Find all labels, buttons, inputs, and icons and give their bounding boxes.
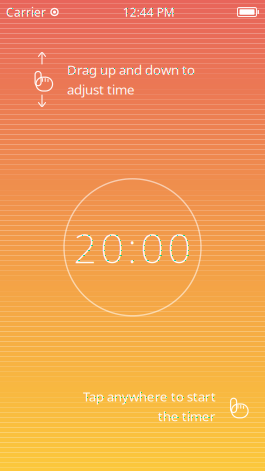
staticText: 12:44 PM bbox=[123, 4, 175, 20]
staticText: adjust time bbox=[67, 80, 135, 98]
staticText: Tap anywhere to start bbox=[83, 388, 216, 405]
staticText: the timer bbox=[158, 407, 216, 425]
staticText: 20:00 bbox=[73, 220, 191, 275]
button[interactable]: Start timer bbox=[64, 179, 201, 316]
staticText: Drag up and down to bbox=[67, 61, 195, 78]
staticText: Carrier bbox=[6, 4, 46, 20]
